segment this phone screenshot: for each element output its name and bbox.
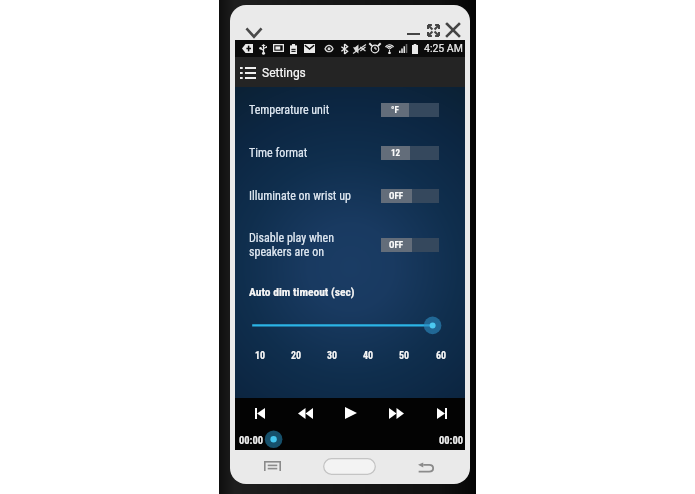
button[interactable]: Maximize <box>427 22 444 38</box>
button[interactable]: °F <box>381 103 439 117</box>
button[interactable]: Recents <box>261 456 283 476</box>
button[interactable]: Illuminate on wrist up <box>235 185 465 207</box>
staticText: 30 <box>327 350 338 362</box>
staticText: Disable play when <box>249 231 334 245</box>
staticText: Time format <box>249 146 308 160</box>
button[interactable]: Minimize <box>401 25 418 41</box>
button[interactable]: Fast forward <box>382 399 410 427</box>
button[interactable]: OFF <box>381 189 439 203</box>
staticText: Temperature unit <box>249 103 330 117</box>
button[interactable]: Settings <box>235 57 465 88</box>
button[interactable]: Temperature unit <box>235 99 465 121</box>
button[interactable]: Disable play when <box>235 231 465 259</box>
staticText: °F <box>391 105 399 116</box>
button[interactable]: Next <box>428 399 456 427</box>
staticText: 4:25 AM <box>424 42 463 54</box>
button[interactable]: Back <box>414 457 437 477</box>
button[interactable]: Time format <box>235 142 465 164</box>
button[interactable]: Home <box>323 458 376 475</box>
staticText: 12 <box>391 148 401 159</box>
button[interactable]: Play <box>337 399 365 427</box>
staticText: 10 <box>255 350 266 362</box>
button[interactable]: Close <box>447 22 463 38</box>
staticText: 60 <box>436 350 447 362</box>
staticText: 00:00 <box>239 434 264 446</box>
staticText: 40 <box>363 350 374 362</box>
button[interactable] <box>235 313 465 337</box>
staticText: 20 <box>291 350 302 362</box>
button[interactable]: OFF <box>381 238 439 252</box>
button[interactable]: Collapse <box>242 22 266 44</box>
staticText: OFF <box>389 191 404 202</box>
staticText: OFF <box>389 240 404 251</box>
button[interactable]: Previous <box>246 399 274 427</box>
button[interactable]: 12 <box>381 146 439 160</box>
staticText: Illuminate on wrist up <box>249 189 351 203</box>
staticText: 50 <box>399 350 410 362</box>
staticText: Auto dim timeout (sec) <box>249 285 355 298</box>
staticText: Settings <box>262 66 306 80</box>
staticText: speakers are on <box>249 245 325 259</box>
staticText: 00:00 <box>439 434 464 446</box>
button[interactable]: Rewind <box>291 399 319 427</box>
